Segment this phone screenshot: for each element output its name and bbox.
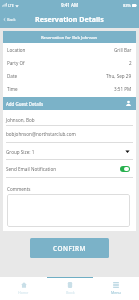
staticText: Johnson, Bob xyxy=(6,117,35,123)
button[interactable]: Date xyxy=(3,69,136,82)
staticText: Add Guest Details xyxy=(6,101,44,107)
button[interactable]: Back xyxy=(0,14,19,25)
button[interactable]: Home xyxy=(0,277,47,300)
staticText: Group Size: 1 xyxy=(6,149,35,155)
button[interactable]: bobjohnson@northstarclub.com xyxy=(3,125,136,143)
staticText: Send Email Notification xyxy=(6,166,57,172)
button[interactable]: Location xyxy=(3,43,136,56)
staticText: Menu xyxy=(111,290,121,295)
button[interactable]: Party Of xyxy=(3,56,136,69)
button[interactable]: Menu xyxy=(93,277,139,300)
staticText: Time xyxy=(7,86,18,92)
staticText: Date xyxy=(7,73,18,79)
staticText: LTE xyxy=(8,3,14,8)
staticText: Reservation Details xyxy=(35,14,104,24)
button[interactable]: CONFIRM xyxy=(30,238,109,258)
staticText: Grill Bar xyxy=(114,47,132,53)
staticText: Book xyxy=(66,290,75,295)
staticText: 3:51 PM xyxy=(114,86,132,92)
button[interactable]: Book xyxy=(47,277,93,300)
other: Guest xyxy=(125,100,132,107)
staticText: CONFIRM xyxy=(53,244,86,253)
button[interactable]: Johnson, Bob xyxy=(3,113,136,126)
staticText: Home xyxy=(18,290,29,295)
staticText: Comments xyxy=(7,186,31,192)
staticText: 2 xyxy=(129,60,132,66)
staticText: 9:41 AM xyxy=(61,2,79,8)
staticText: 83% xyxy=(123,3,131,8)
button[interactable]: Time xyxy=(3,82,136,95)
button[interactable]: Add Guest Details xyxy=(3,97,136,110)
staticText: Reservation for Bob Johnson xyxy=(41,35,98,41)
button[interactable]: Send Email Notification xyxy=(3,160,136,178)
staticText: Thu, Sep 29 xyxy=(106,73,132,79)
staticText: bobjohnson@northstarclub.com xyxy=(6,131,76,137)
staticText: Back xyxy=(7,17,16,22)
staticText: Party Of xyxy=(7,60,25,66)
button[interactable]: Group Size: 1 xyxy=(3,143,136,160)
staticText: Location xyxy=(7,47,26,53)
button[interactable] xyxy=(7,194,130,227)
